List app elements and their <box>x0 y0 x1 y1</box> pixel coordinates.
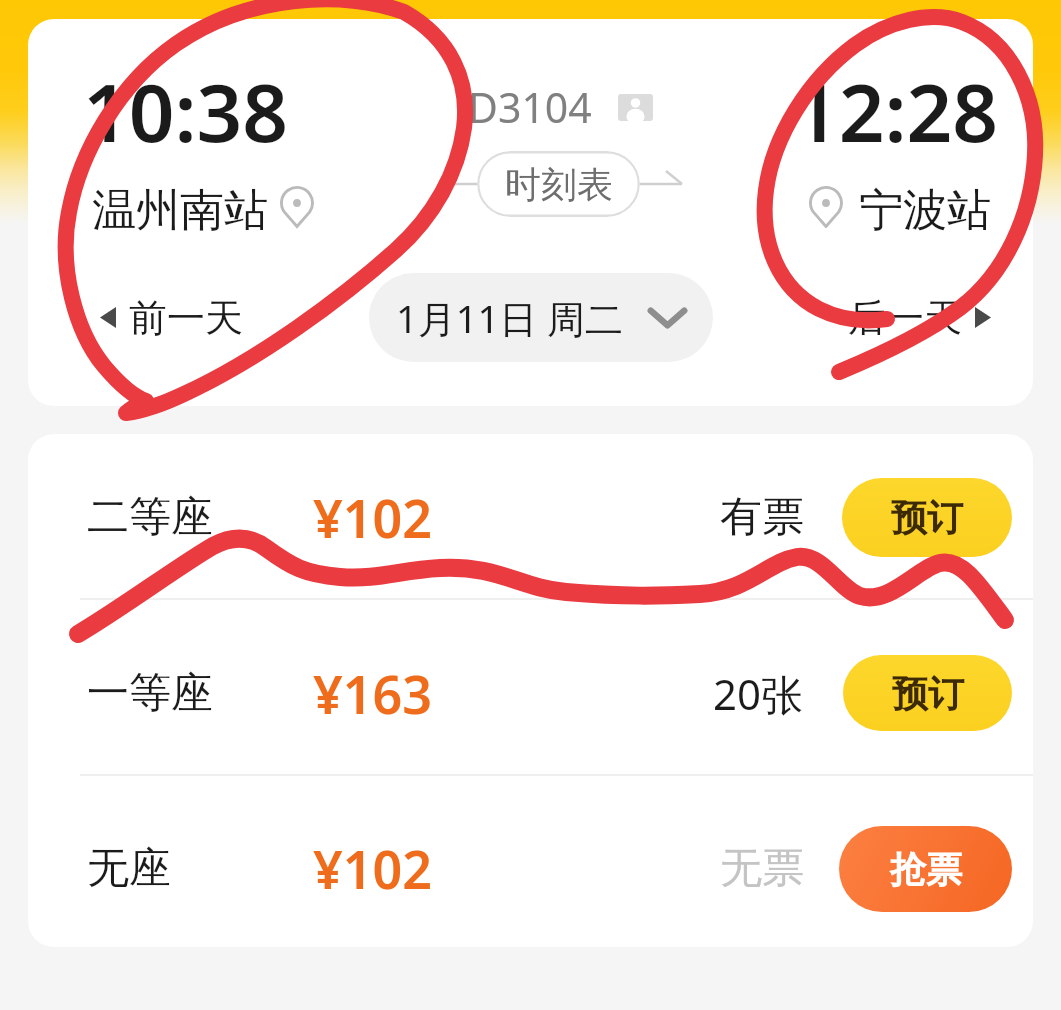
staticText: 10:38 <box>83 56 289 165</box>
staticText: 预订 <box>891 495 963 540</box>
other: Location <box>809 186 843 228</box>
staticText: 温州南站 <box>92 183 268 238</box>
button[interactable]: 预订 <box>843 655 1012 731</box>
staticText: 12:28 <box>793 56 999 165</box>
other: Location <box>280 186 314 228</box>
staticText: 无座 <box>87 842 171 895</box>
staticText: ¥102 <box>313 482 432 553</box>
staticText: 宁波站 <box>859 183 991 238</box>
button[interactable]: 二等座 <box>28 434 1033 602</box>
staticText: 无票 <box>720 842 804 895</box>
button[interactable]: 后一天 <box>848 273 991 362</box>
staticText: 抢票 <box>890 847 962 892</box>
staticText: 前一天 <box>129 294 243 342</box>
staticText: 后一天 <box>848 294 962 342</box>
other: Passenger <box>618 94 653 121</box>
button[interactable]: 1月11日 周二 <box>369 273 713 362</box>
staticText: 有票 <box>720 491 804 544</box>
staticText: 时刻表 <box>505 162 613 207</box>
staticText: D3104 <box>468 79 592 135</box>
button[interactable]: 一等座 <box>28 608 1033 778</box>
staticText: 一等座 <box>87 667 213 720</box>
staticText: 二等座 <box>87 491 213 544</box>
staticText: 预订 <box>892 671 964 716</box>
staticText: ¥102 <box>313 833 432 904</box>
staticText: ¥163 <box>313 658 432 729</box>
button[interactable]: 预订 <box>842 478 1012 557</box>
button[interactable]: 前一天 <box>100 273 243 362</box>
staticText: 1月11日 周二 <box>396 292 624 344</box>
button[interactable]: 无座 <box>28 782 1033 947</box>
button[interactable]: 时刻表 <box>477 151 640 217</box>
button[interactable]: 抢票 <box>839 826 1012 912</box>
staticText: 20张 <box>713 665 804 722</box>
